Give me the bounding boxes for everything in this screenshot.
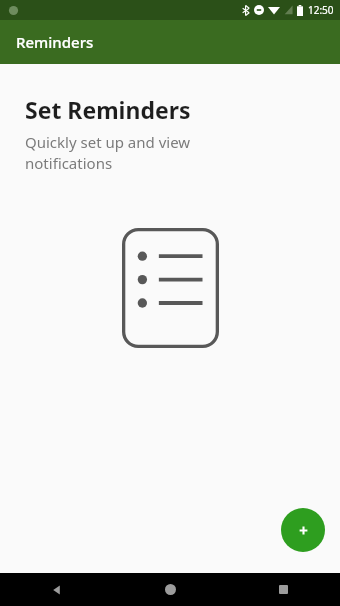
staticText: Set Reminders [25, 94, 191, 125]
staticText: 12:50 [308, 3, 334, 17]
button[interactable]: Back [0, 573, 114, 606]
button[interactable]: Home [114, 573, 227, 606]
button[interactable]: Add reminder [281, 508, 325, 552]
staticText: Reminders [16, 32, 94, 52]
staticText: Quickly set up and view notifications [25, 132, 191, 174]
button[interactable]: Recent apps [227, 573, 340, 606]
